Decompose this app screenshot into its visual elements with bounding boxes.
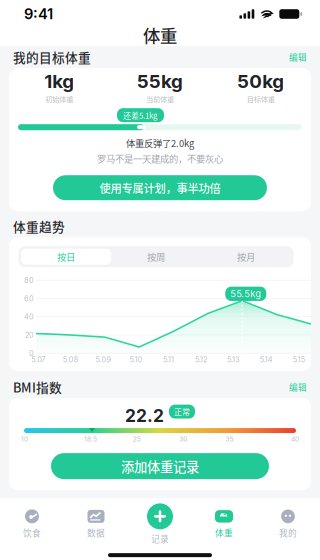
staticText: 9:41 <box>24 5 53 23</box>
staticText: 5.11 <box>163 355 174 364</box>
staticText: 添加体重记录 <box>121 456 199 476</box>
staticText: 5.08 <box>63 355 79 364</box>
staticText: 使用专属计划，事半功倍 <box>99 179 220 196</box>
button[interactable]: 我的 <box>260 507 316 541</box>
staticText: 40 <box>24 312 34 321</box>
staticText: 5.10 <box>129 355 142 364</box>
staticText: 5.07 <box>31 355 45 364</box>
staticText: 18.5 <box>84 435 97 443</box>
staticText: 罗马不是一天建成的，不要灰心 <box>97 152 223 165</box>
button[interactable]: 按月 <box>201 249 291 265</box>
button[interactable]: 体重 <box>196 507 252 541</box>
staticText: 25 <box>133 435 141 443</box>
staticText: 当前体重 <box>146 94 174 104</box>
button[interactable]: 按日 <box>21 249 111 265</box>
staticText: 80 <box>24 276 34 285</box>
staticText: 按月 <box>237 250 255 263</box>
staticText: 目标体重 <box>247 94 275 104</box>
staticText: 5.15 <box>293 355 305 364</box>
staticText: 5.14 <box>260 355 273 364</box>
staticText: 还差5.1kg <box>123 109 158 121</box>
staticText: 按日 <box>57 250 75 263</box>
staticText: 1kg <box>44 70 74 93</box>
button[interactable]: 记录 <box>132 503 188 545</box>
staticText: 体重反弹了2.0kg <box>126 136 194 150</box>
button[interactable]: 饮食 <box>4 507 60 541</box>
staticText: 我的目标体重 <box>13 48 91 66</box>
button[interactable]: 数据 <box>68 507 124 541</box>
button[interactable]: 编辑 <box>289 381 307 393</box>
staticText: 我的 <box>279 526 297 539</box>
staticText: 按周 <box>147 250 165 263</box>
staticText: 正常 <box>174 406 190 417</box>
button[interactable]: 使用专属计划，事半功倍 <box>53 175 267 200</box>
staticText: 22.2 <box>125 405 164 426</box>
staticText: 体重趋势 <box>13 217 65 235</box>
staticText: 5.09 <box>95 355 111 364</box>
staticText: 35 <box>225 435 233 443</box>
staticText: 40 <box>291 435 299 443</box>
staticText: 编辑 <box>289 381 307 393</box>
staticText: BMI指数 <box>13 378 62 396</box>
button[interactable]: 添加体重记录 <box>51 453 269 479</box>
staticText: 30 <box>179 435 187 443</box>
button[interactable]: 编辑 <box>289 51 307 63</box>
staticText: 10 <box>21 435 28 443</box>
staticText: 60 <box>24 294 34 303</box>
staticText: 记录 <box>151 532 169 545</box>
staticText: 编辑 <box>289 51 307 63</box>
button[interactable]: 按周 <box>111 249 201 265</box>
staticText: 5.13 <box>227 355 240 364</box>
staticText: 55.5kg <box>230 288 261 299</box>
staticText: 初始体重 <box>45 94 73 104</box>
staticText: 饮食 <box>23 526 41 539</box>
staticText: 5.12 <box>195 355 207 364</box>
staticText: 50kg <box>237 70 284 93</box>
staticText: 55kg <box>137 70 183 93</box>
staticText: 体重 <box>143 22 177 48</box>
staticText: 数据 <box>87 526 105 539</box>
staticText: 20 <box>25 330 34 339</box>
staticText: 0 <box>29 349 34 358</box>
staticText: 体重 <box>215 526 233 539</box>
